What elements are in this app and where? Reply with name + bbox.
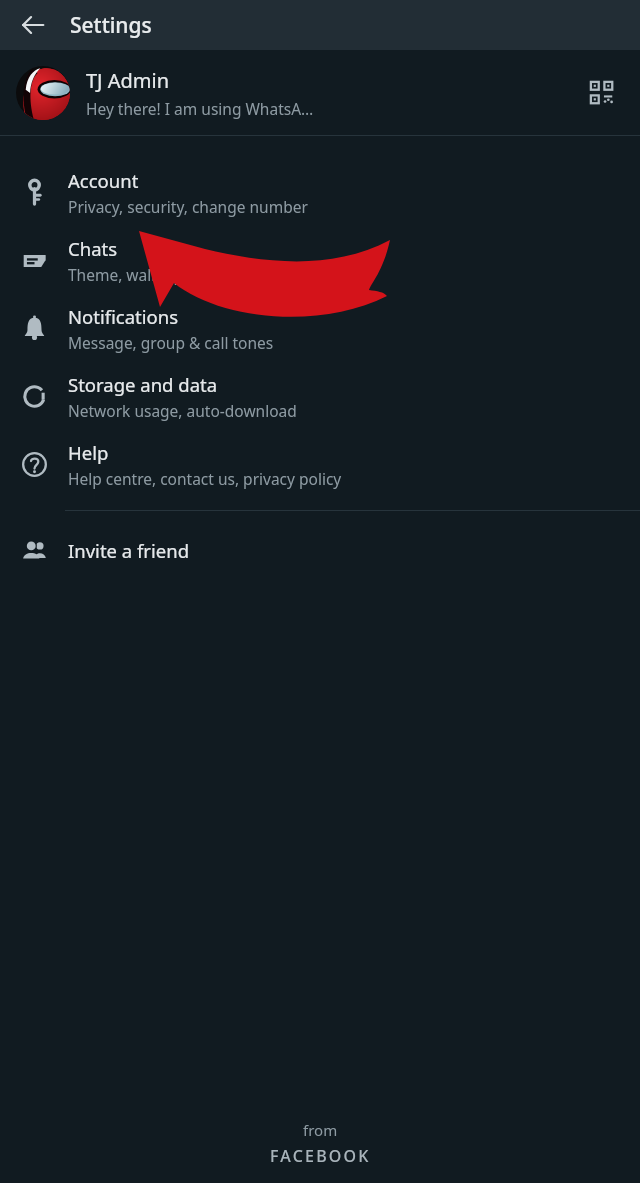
button[interactable]: QR code bbox=[580, 71, 624, 115]
staticText: Message, group & call tones bbox=[68, 332, 274, 353]
staticText: Account bbox=[68, 168, 139, 193]
button[interactable]: TJ Admin bbox=[0, 50, 640, 135]
button[interactable]: Chats bbox=[0, 226, 640, 294]
staticText: Chats bbox=[68, 236, 118, 261]
button[interactable]: Storage and data bbox=[0, 362, 640, 430]
staticText: Network usage, auto-download bbox=[68, 400, 297, 421]
button[interactable]: Help bbox=[0, 430, 640, 498]
staticText: Privacy, security, change number bbox=[68, 196, 308, 217]
staticText: FACEBOOK bbox=[270, 1145, 371, 1167]
button[interactable]: Notifications bbox=[0, 294, 640, 362]
staticText: TJ Admin bbox=[86, 67, 170, 94]
staticText: Notifications bbox=[68, 304, 179, 329]
staticText: Hey there! I am using WhatsA… bbox=[86, 98, 314, 119]
staticText: Theme, wallpapers, chat history bbox=[68, 264, 300, 285]
staticText: Help bbox=[68, 440, 109, 465]
staticText: from bbox=[303, 1120, 338, 1140]
staticText: Help centre, contact us, privacy policy bbox=[68, 468, 342, 489]
button[interactable]: Back bbox=[10, 2, 56, 48]
button[interactable]: Account bbox=[0, 158, 640, 226]
staticText: Invite a friend bbox=[68, 538, 190, 563]
staticText: Storage and data bbox=[68, 372, 218, 397]
button[interactable]: Invite a friend bbox=[0, 511, 640, 589]
staticText: Settings bbox=[70, 11, 152, 40]
